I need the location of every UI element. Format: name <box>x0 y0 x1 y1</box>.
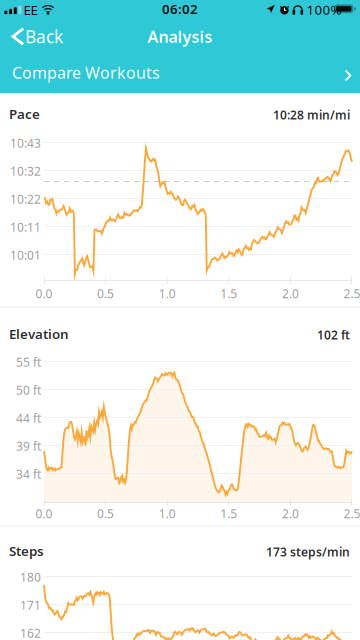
staticText: 2.5 <box>343 505 360 521</box>
staticText: Back <box>25 25 63 48</box>
staticText: 102 ft <box>317 327 350 343</box>
staticText: EE <box>23 1 37 19</box>
staticText: 10:22 <box>10 191 41 207</box>
button[interactable]: Back <box>0 20 62 58</box>
staticText: 06:02 <box>162 0 198 18</box>
staticText: 0.0 <box>35 285 52 301</box>
staticText: 180 <box>20 569 41 585</box>
staticText: 34 ft <box>16 466 41 482</box>
staticText: 2.5 <box>343 285 360 301</box>
staticText: 100% <box>307 1 342 18</box>
staticText: 0.5 <box>97 285 114 301</box>
staticText: Elevation <box>9 325 69 343</box>
staticText: 171 <box>20 597 41 613</box>
staticText: Analysis <box>147 26 212 47</box>
staticText: 0.0 <box>35 505 52 521</box>
staticText: 10:11 <box>10 219 41 235</box>
staticText: 0.5 <box>97 505 114 521</box>
staticText: 10:43 <box>10 135 41 151</box>
staticText: 162 <box>20 625 41 640</box>
staticText: Pace <box>9 105 40 123</box>
button[interactable]: Compare Workouts <box>0 58 360 93</box>
staticText: 173 steps/min <box>266 544 350 560</box>
staticText: 44 ft <box>16 410 41 426</box>
staticText: 50 ft <box>16 382 41 398</box>
staticText: 2.0 <box>282 285 299 301</box>
staticText: 1.5 <box>220 285 237 301</box>
staticText: 1.5 <box>220 505 237 521</box>
staticText: 10:01 <box>10 247 41 263</box>
staticText: 39 ft <box>16 438 41 454</box>
staticText: 2.0 <box>282 505 299 521</box>
staticText: Steps <box>9 542 44 560</box>
staticText: 10:32 <box>10 163 41 179</box>
staticText: Compare Workouts <box>12 62 160 83</box>
staticText: 10:28 min/mi <box>273 107 350 123</box>
staticText: 1.0 <box>159 285 176 301</box>
staticText: 1.0 <box>159 505 176 521</box>
staticText: 55 ft <box>16 354 41 370</box>
